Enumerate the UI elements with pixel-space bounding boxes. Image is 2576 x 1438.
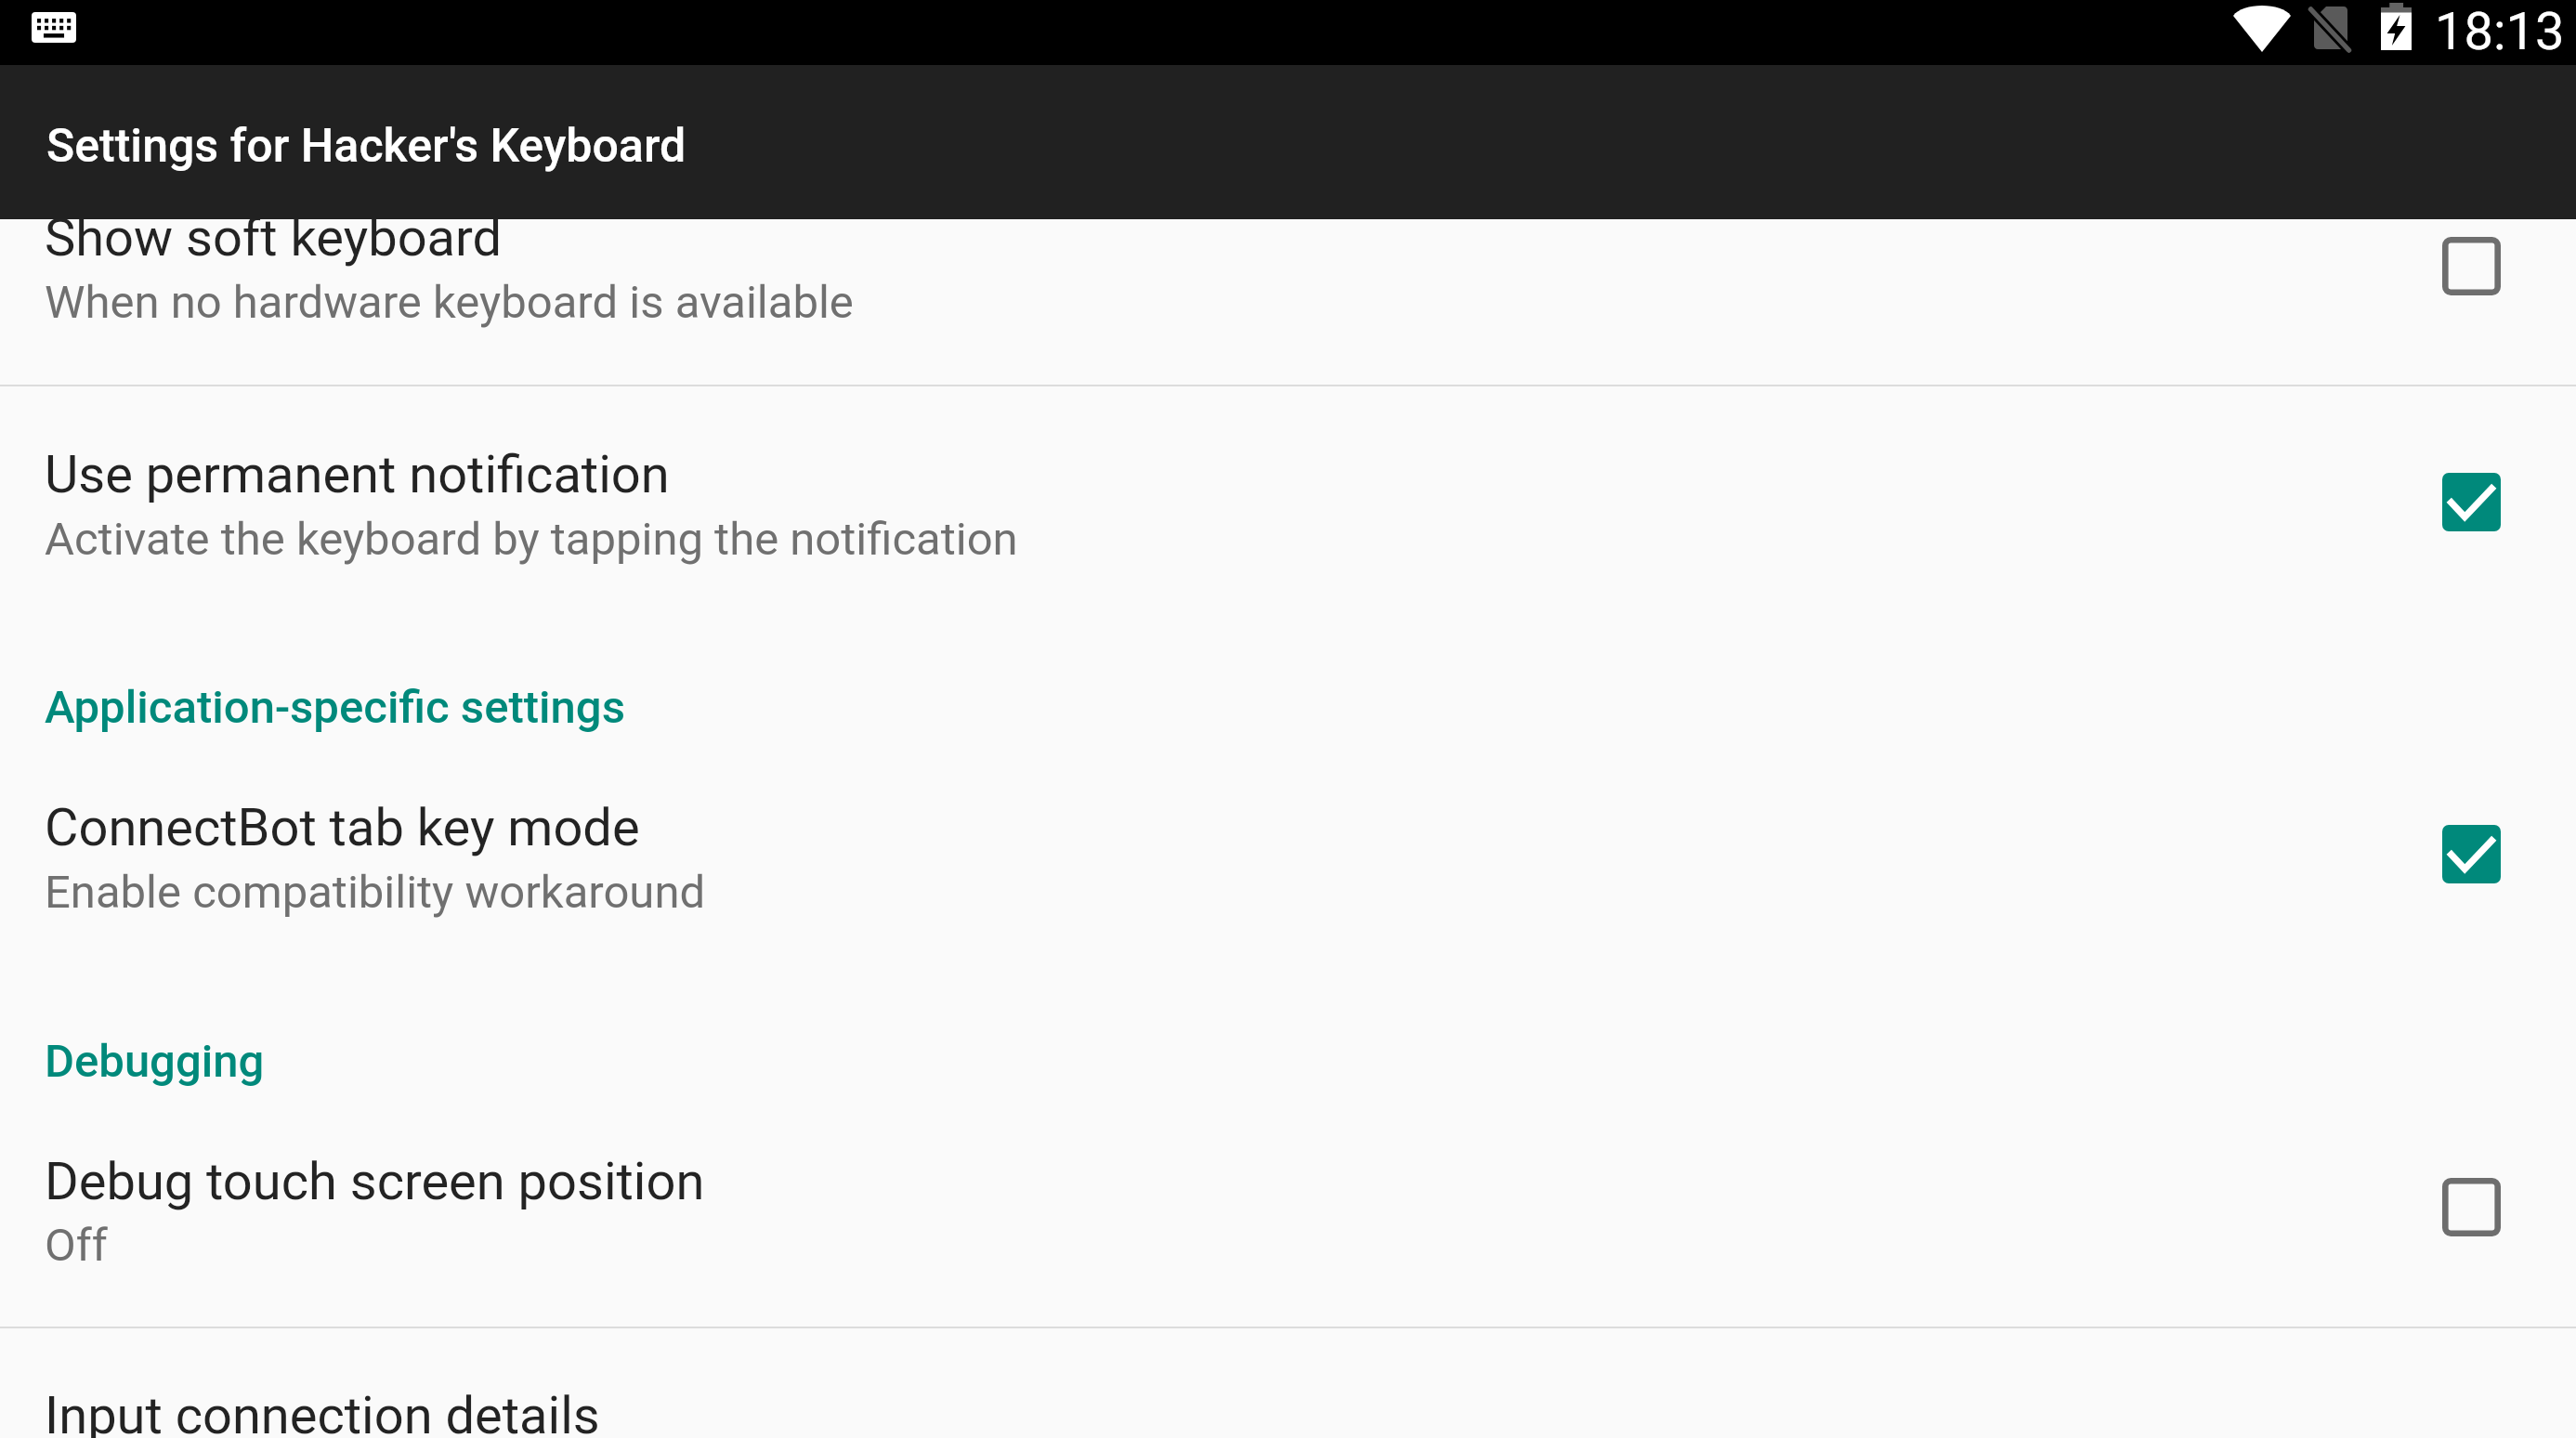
staticText: Activate the keyboard by tapping the not… [45,513,1018,566]
button[interactable]: Input connection details [0,1328,2576,1438]
staticText: Debug touch screen position [45,1151,705,1212]
staticText: Show soft keyboard [45,207,503,268]
staticText: Settings for Hacker's Keyboard [46,119,686,174]
staticText: Use permanent notification [45,444,670,505]
button[interactable]: Debug touch screen position, not checked [2442,1178,2501,1236]
button[interactable]: Debug touch screen position [0,1096,2576,1327]
other: No SIM card [2307,2,2353,56]
staticText: ConnectBot tab key mode [45,797,640,858]
staticText: 18:13 [2435,1,2565,62]
button[interactable]: Show soft keyboard, not checked [2442,237,2501,295]
staticText: When no hardware keyboard is available [45,276,854,329]
other: Battery charging [2381,3,2412,51]
staticText: Debugging [45,1035,265,1088]
staticText: Off [45,1219,108,1272]
staticText: Application-specific settings [45,681,625,734]
button[interactable]: ConnectBot tab key mode [0,743,2576,977]
button[interactable]: Use permanent notification, checked [2442,473,2501,531]
other: Keyboard notification [32,12,76,43]
button[interactable]: Show soft keyboard [0,167,2576,385]
button[interactable]: ConnectBot tab key mode, checked [2442,825,2501,883]
staticText: Enable compatibility workaround [45,866,706,919]
button[interactable]: Use permanent notification [0,386,2576,624]
other: Wi-Fi [2233,4,2291,52]
staticText: Input connection details [45,1385,600,1438]
